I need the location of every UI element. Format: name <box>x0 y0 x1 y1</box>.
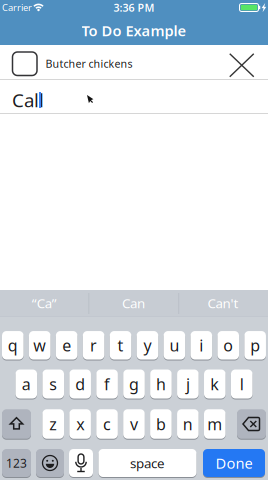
button[interactable]: Can <box>89 290 177 316</box>
button[interactable]: Done <box>203 449 265 477</box>
staticText: c <box>103 413 111 435</box>
staticText: Butcher chickens <box>45 56 132 71</box>
staticText: 123 <box>6 455 27 471</box>
staticText: Can't <box>207 294 238 312</box>
staticText: “Ca” <box>32 294 57 312</box>
button[interactable]: v <box>123 409 145 439</box>
staticText: l <box>240 373 244 395</box>
staticText: To Do Example <box>81 21 186 40</box>
button[interactable]: y <box>137 331 158 360</box>
staticText: p <box>250 335 260 356</box>
staticText: Call <box>12 88 44 112</box>
button[interactable]: c <box>96 409 118 439</box>
button[interactable]: z <box>42 409 64 439</box>
button[interactable]: b <box>150 409 172 439</box>
button[interactable]: Delete <box>237 409 266 439</box>
staticText: s <box>49 373 57 395</box>
staticText: g <box>129 373 139 395</box>
staticText: f <box>104 373 110 395</box>
staticText: Done <box>215 453 252 473</box>
staticText: Can <box>122 294 145 312</box>
button[interactable]: l <box>231 369 252 398</box>
button[interactable]: e <box>56 331 77 360</box>
button[interactable]: space <box>98 449 196 477</box>
button[interactable]: o <box>217 331 239 360</box>
staticText: t <box>117 335 123 356</box>
staticText: Carrier <box>2 1 32 14</box>
button[interactable]: Dictate <box>69 449 93 477</box>
button[interactable]: f <box>96 369 118 398</box>
button[interactable]: w <box>29 331 50 360</box>
staticText: b <box>156 413 166 435</box>
button[interactable]: p <box>244 331 266 360</box>
staticText: j <box>186 373 190 395</box>
button[interactable]: x <box>69 409 91 439</box>
staticText: q <box>8 335 18 356</box>
button[interactable]: Numbers <box>2 449 31 477</box>
button[interactable]: n <box>177 409 199 439</box>
staticText: h <box>156 373 166 395</box>
button[interactable]: Emoji <box>36 449 64 477</box>
button[interactable]: u <box>164 331 185 360</box>
button[interactable]: j <box>177 369 199 398</box>
staticText: n <box>183 413 193 435</box>
button[interactable]: Shift <box>2 409 31 439</box>
button[interactable]: Can't <box>179 290 267 316</box>
staticText: z <box>49 413 57 435</box>
staticText: e <box>62 335 71 356</box>
button[interactable]: h <box>150 369 172 398</box>
button[interactable]: a <box>15 369 37 398</box>
button[interactable]: “Ca” <box>0 290 88 316</box>
button[interactable]: i <box>190 331 212 360</box>
button[interactable]: Delete task <box>229 53 254 77</box>
staticText: d <box>75 373 85 395</box>
staticText: m <box>207 413 222 435</box>
staticText: k <box>210 373 219 395</box>
staticText: w <box>33 335 46 356</box>
button[interactable]: r <box>83 331 104 360</box>
button[interactable]: k <box>204 369 226 398</box>
staticText: o <box>223 335 233 356</box>
staticText: r <box>90 335 97 356</box>
staticText: a <box>22 373 31 395</box>
button[interactable]: s <box>42 369 64 398</box>
staticText: u <box>169 335 179 356</box>
staticText: space <box>130 454 165 472</box>
staticText: x <box>76 413 84 435</box>
staticText: y <box>143 335 151 356</box>
staticText: i <box>199 335 203 356</box>
button[interactable]: d <box>69 369 91 398</box>
button[interactable]: Complete task <box>12 52 37 75</box>
staticText: 3:36 PM <box>113 0 154 15</box>
staticText: v <box>130 413 138 435</box>
button[interactable]: New to-do text field <box>0 80 268 113</box>
button[interactable]: m <box>204 409 226 439</box>
button[interactable]: t <box>110 331 131 360</box>
button[interactable]: q <box>2 331 24 360</box>
button[interactable]: g <box>123 369 145 398</box>
